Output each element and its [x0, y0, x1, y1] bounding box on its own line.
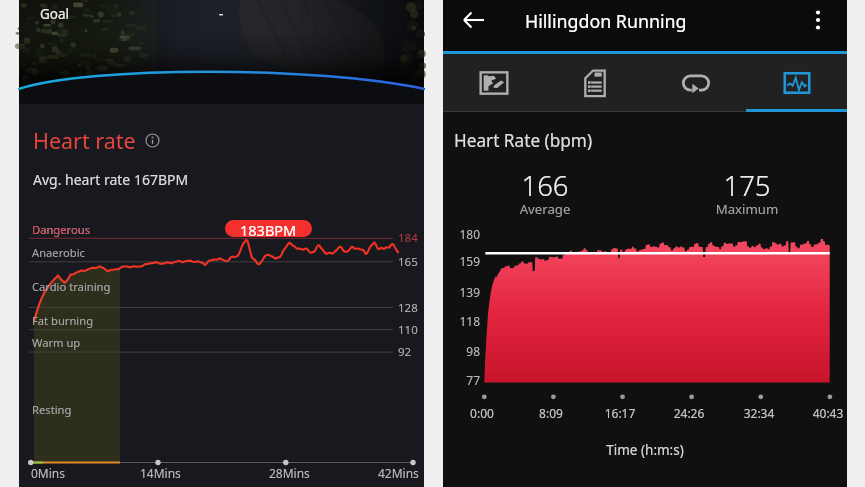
staticText: Heart Rate (bpm)	[454, 129, 593, 152]
staticText: 14Mins	[140, 465, 181, 481]
staticText: 166	[495, 167, 595, 204]
button[interactable]: Map	[443, 54, 544, 112]
staticText: 77	[447, 372, 480, 388]
staticText: 32:34	[731, 405, 787, 421]
staticText: Time (h:m:s)	[443, 441, 847, 459]
staticText: 159	[447, 253, 480, 269]
staticText: 40:43	[800, 405, 856, 421]
button[interactable]: Back	[455, 1, 493, 39]
staticText: 28Mins	[269, 465, 310, 481]
staticText: 42Mins	[378, 465, 419, 481]
staticText: 184	[398, 230, 418, 246]
staticText: 165	[398, 254, 418, 270]
staticText: 118	[447, 313, 480, 329]
staticText: Hillingdon Running	[525, 9, 687, 33]
staticText: 0Mins	[31, 465, 66, 481]
staticText: Fat burning	[32, 313, 94, 328]
staticText: Heart rate	[33, 126, 136, 155]
staticText: 139	[447, 284, 480, 300]
staticText: Warm up	[32, 335, 81, 350]
staticText: 128	[398, 300, 418, 316]
staticText: 16:17	[592, 405, 648, 421]
staticText: Avg. heart rate 167BPM	[33, 170, 189, 189]
staticText: 24:26	[661, 405, 717, 421]
button[interactable]: Summary	[544, 54, 645, 112]
staticText: 8:09	[523, 405, 579, 421]
button[interactable]: More options	[802, 4, 834, 36]
staticText: 98	[447, 343, 480, 359]
button[interactable]: Charts	[746, 54, 847, 112]
button[interactable]: Laps	[645, 54, 746, 112]
staticText: Average	[495, 200, 595, 218]
staticText: 180	[447, 226, 480, 242]
staticText: 92	[398, 344, 412, 360]
staticText: Resting	[32, 402, 72, 417]
staticText: 175	[697, 167, 797, 204]
staticText: Anaerobic	[32, 245, 85, 260]
staticText: Dangerous	[32, 222, 90, 237]
staticText: 110	[398, 322, 418, 338]
staticText: 183BPM	[240, 220, 297, 237]
staticText: Cardio training	[32, 279, 111, 294]
staticText: Maximum	[697, 200, 797, 218]
staticText: Dangerous	[32, 222, 90, 237]
staticText: Goal	[40, 5, 70, 23]
staticText: 0:00	[454, 405, 510, 421]
staticText: -	[219, 5, 224, 23]
